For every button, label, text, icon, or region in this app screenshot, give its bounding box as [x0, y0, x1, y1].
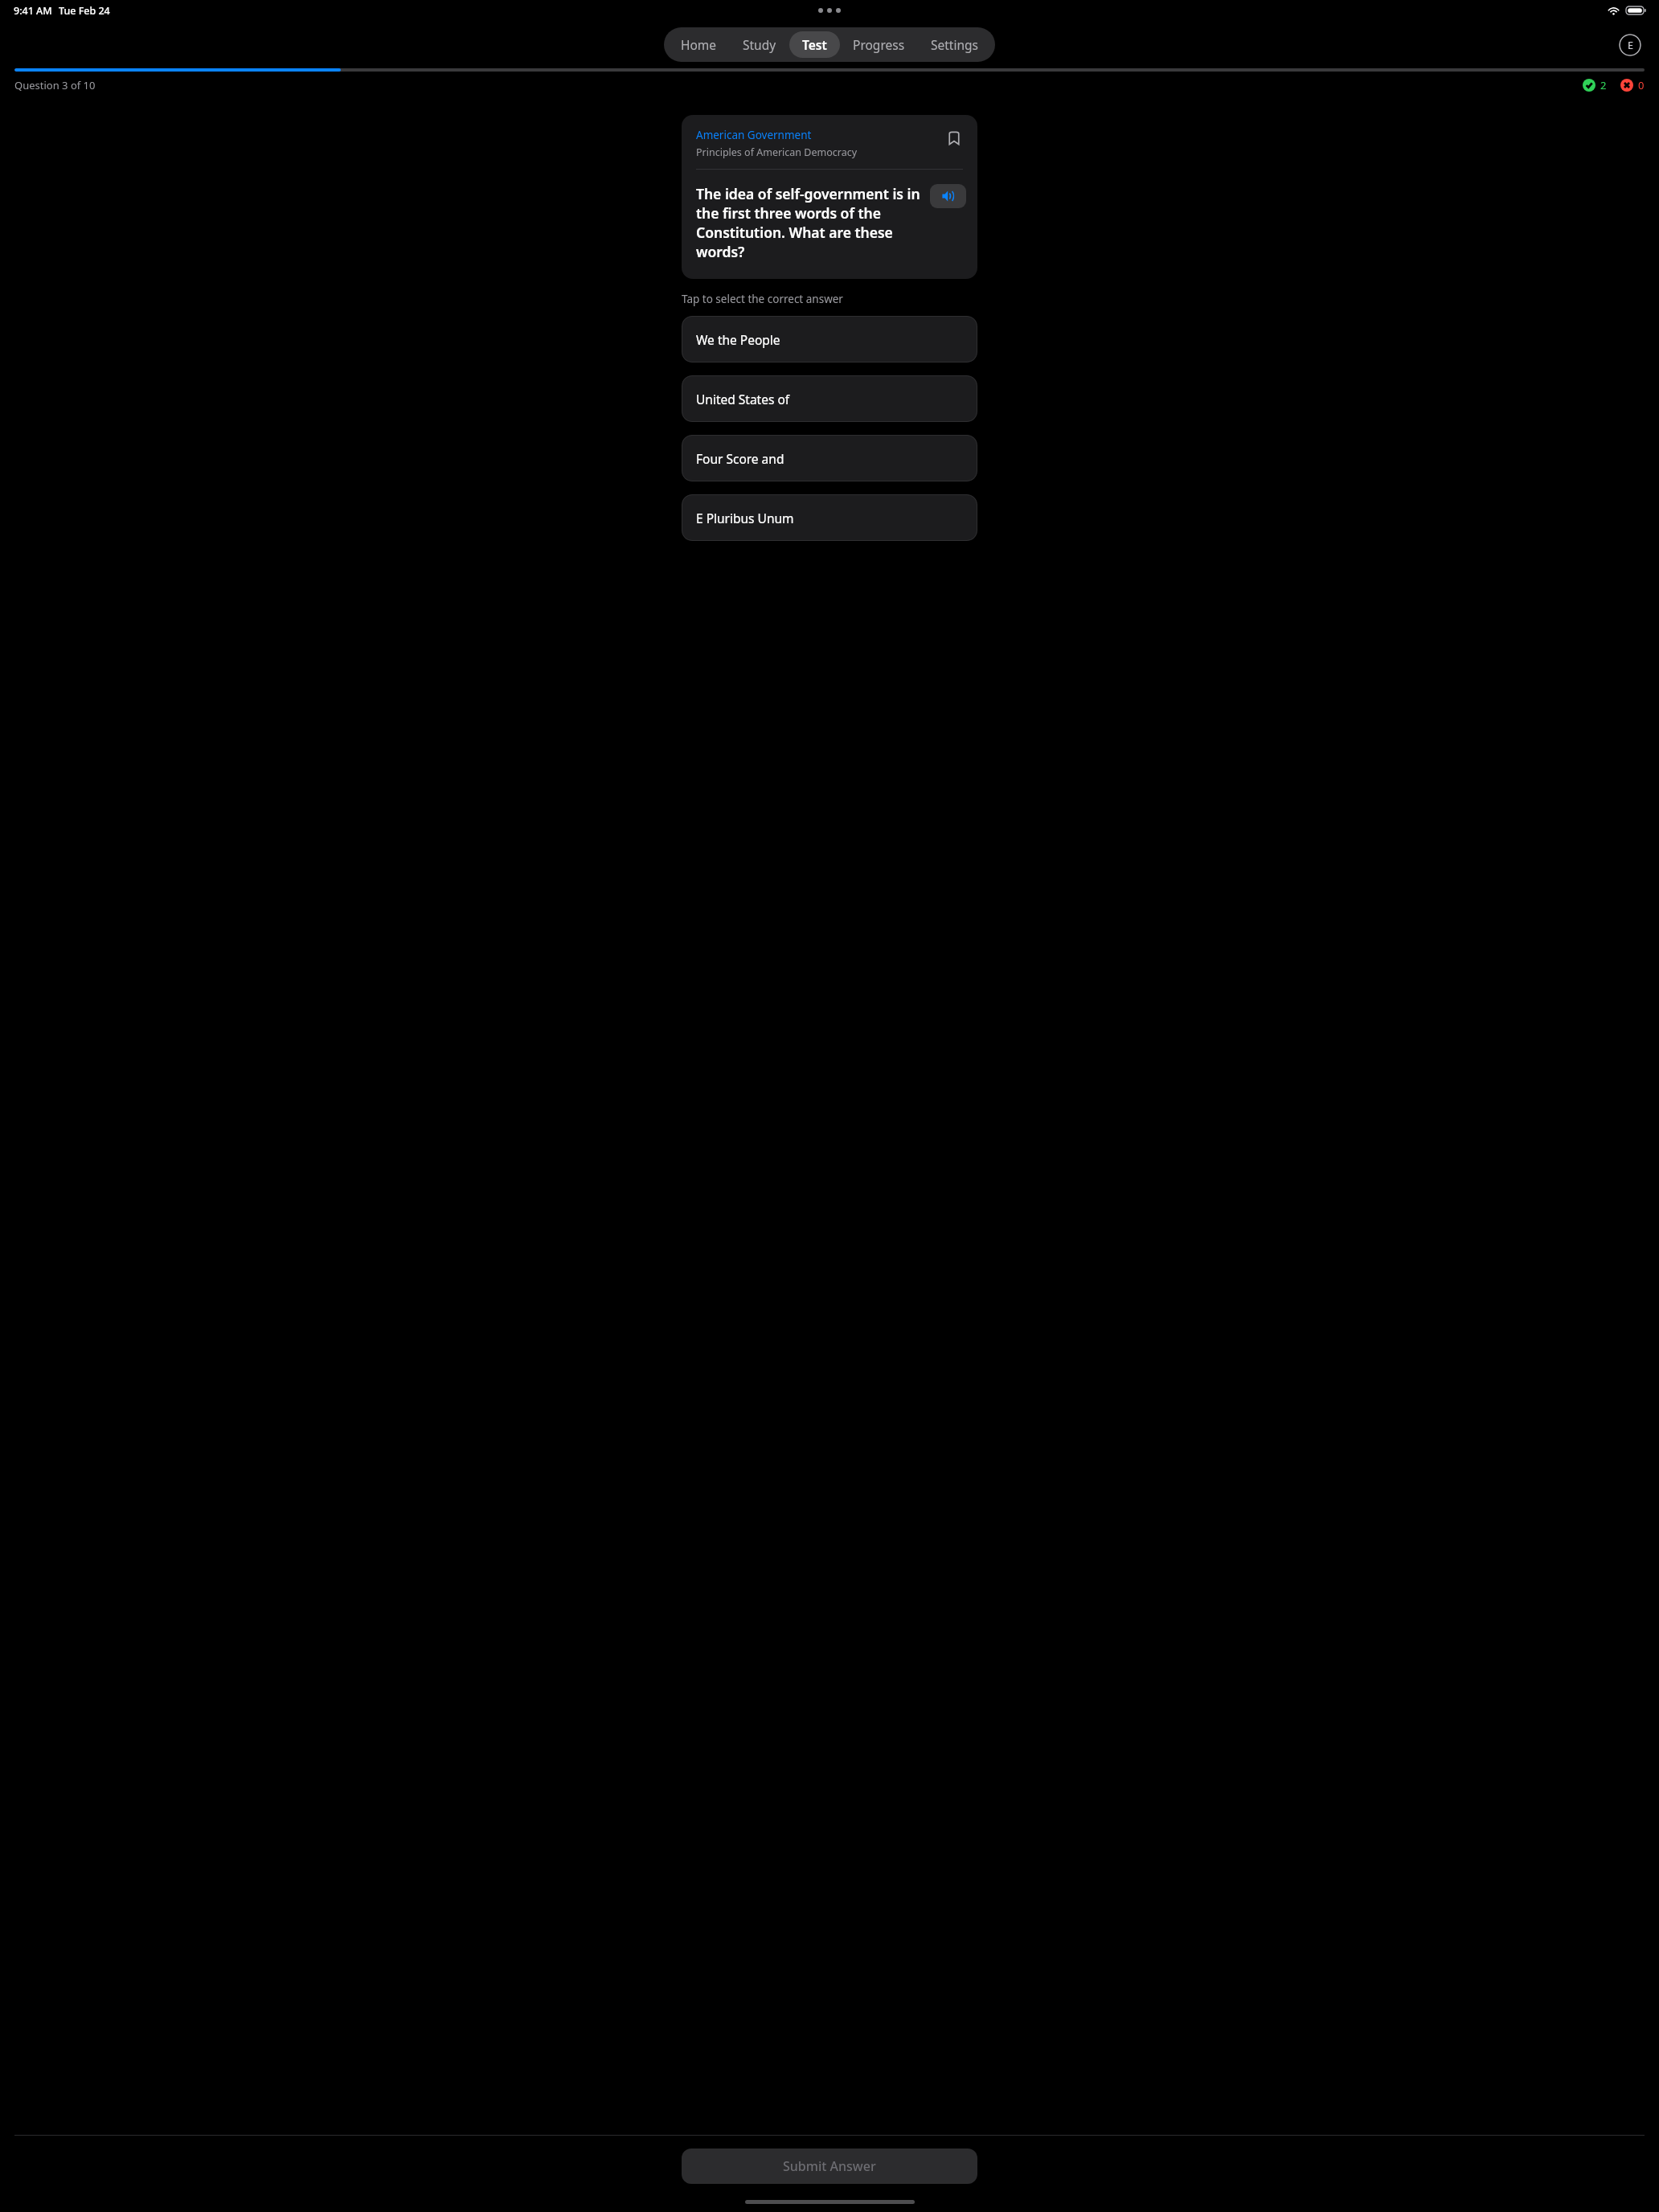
- staticText: Settings: [931, 36, 978, 53]
- staticText: E: [1628, 39, 1633, 52]
- button[interactable]: United States of: [682, 375, 977, 422]
- staticText: The idea of self-government is in the fi…: [696, 184, 925, 261]
- button[interactable]: Progress: [840, 31, 918, 58]
- button[interactable]: Settings: [918, 31, 991, 58]
- staticText: United States of: [696, 391, 790, 408]
- staticText: Progress: [853, 36, 905, 53]
- button[interactable]: Test: [789, 31, 840, 58]
- staticText: Study: [743, 36, 776, 53]
- staticText: Tue Feb 24: [59, 4, 110, 18]
- staticText: Four Score and: [696, 450, 784, 467]
- button[interactable]: E Pluribus Unum: [682, 494, 977, 541]
- button[interactable]: Bookmark: [944, 128, 965, 149]
- button[interactable]: Submit Answer: [682, 2149, 977, 2184]
- button[interactable]: Play audio: [930, 184, 966, 208]
- staticText: Test: [802, 36, 827, 53]
- staticText: Submit Answer: [783, 2157, 876, 2175]
- button[interactable]: Four Score and: [682, 435, 977, 481]
- staticText: Principles of American Democracy: [696, 145, 858, 159]
- staticText: American Government: [696, 128, 812, 142]
- button[interactable]: Home: [668, 31, 730, 58]
- staticText: We the People: [696, 331, 780, 348]
- button[interactable]: Study: [730, 31, 789, 58]
- staticText: Tap to select the correct answer: [682, 292, 843, 306]
- button[interactable]: We the People: [682, 316, 977, 363]
- staticText: 0: [1638, 78, 1645, 92]
- staticText: 2: [1600, 78, 1607, 92]
- staticText: 9:41 AM: [14, 4, 52, 18]
- staticText: Home: [681, 36, 717, 53]
- staticText: E Pluribus Unum: [696, 510, 794, 526]
- staticText: Question 3 of 10: [14, 78, 96, 92]
- button[interactable]: Profile: [1619, 34, 1641, 56]
